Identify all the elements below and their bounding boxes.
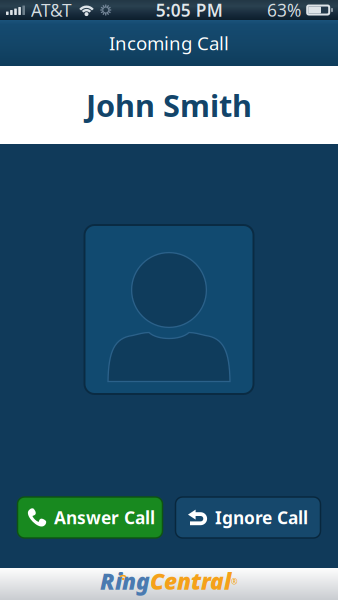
staticText: Ignore Call <box>215 506 308 529</box>
staticText: Incoming Call <box>109 31 229 55</box>
staticText: ® <box>231 576 238 587</box>
staticText: Central <box>150 566 231 596</box>
staticText: 63% <box>267 0 301 21</box>
button[interactable]: Answer Call <box>17 497 162 538</box>
staticText: Ring <box>100 566 150 596</box>
staticText: John Smith <box>86 85 252 125</box>
button[interactable]: Ignore Call <box>175 497 320 538</box>
staticText: Answer Call <box>54 506 155 529</box>
staticText: AT&T <box>31 0 72 21</box>
staticText: 5:05 PM <box>156 0 223 21</box>
